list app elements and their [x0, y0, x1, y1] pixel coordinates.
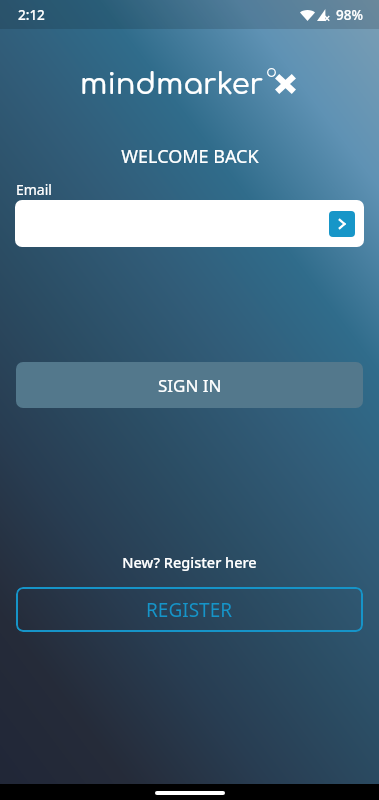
staticText: mindmarker — [80, 68, 264, 100]
staticText: WELCOME BACK — [121, 144, 259, 169]
button[interactable]: Continue — [329, 211, 355, 237]
staticText: Email — [16, 180, 52, 199]
staticText: 98% — [336, 6, 363, 24]
staticText: SIGN IN — [158, 374, 222, 397]
staticText: REGISTER — [146, 597, 233, 623]
staticText: New? Register here — [122, 552, 257, 572]
staticText: 2:12 — [18, 6, 45, 24]
button[interactable]: SIGN IN — [16, 362, 363, 408]
button[interactable]: REGISTER — [16, 587, 363, 632]
button[interactable]: Continue — [15, 200, 364, 247]
